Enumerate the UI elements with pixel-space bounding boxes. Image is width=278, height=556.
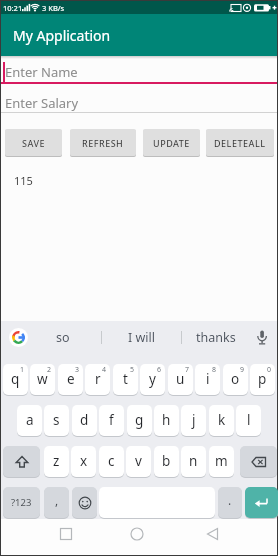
staticText: Enter Salary — [5, 94, 79, 112]
staticText: i — [206, 370, 210, 388]
button[interactable] — [245, 487, 278, 518]
button[interactable]: . — [218, 487, 242, 518]
button[interactable]: q — [3, 364, 28, 395]
staticText: g — [135, 411, 144, 429]
staticText: h — [162, 411, 171, 429]
button[interactable]: m — [209, 446, 234, 477]
button[interactable]: j — [181, 405, 206, 436]
staticText: DELETEALL — [214, 137, 266, 149]
button[interactable] — [194, 521, 230, 551]
staticText: I will — [128, 329, 155, 346]
staticText: q — [11, 370, 20, 388]
button[interactable]: v — [126, 446, 151, 477]
button[interactable]: f — [99, 405, 124, 436]
staticText: a — [26, 411, 34, 429]
button[interactable]: r — [85, 364, 110, 395]
staticText: 0 — [267, 365, 272, 375]
button[interactable]: d — [72, 405, 97, 436]
staticText: thanks — [196, 329, 236, 346]
button[interactable] — [72, 487, 97, 518]
staticText: 2 — [47, 365, 52, 375]
button[interactable] — [119, 521, 155, 551]
button[interactable]: o — [223, 364, 248, 395]
staticText: t — [123, 370, 128, 388]
staticText: REFRESH — [82, 137, 124, 149]
staticText: so — [56, 329, 70, 346]
button[interactable] — [3, 446, 40, 477]
staticText: 9 — [240, 365, 245, 375]
button[interactable]: I will — [104, 326, 178, 349]
staticText: . — [228, 492, 232, 508]
button[interactable]: SAVE — [5, 129, 62, 156]
staticText: UPDATE — [153, 137, 190, 149]
staticText: l — [247, 411, 251, 429]
button[interactable]: Enter Name — [1, 56, 277, 84]
staticText: 3 — [75, 365, 80, 375]
staticText: c — [108, 452, 115, 470]
staticText: o — [231, 370, 240, 388]
staticText: n — [189, 452, 198, 470]
staticText: x — [80, 452, 88, 470]
staticText: ?123 — [11, 496, 32, 509]
staticText: 4 — [102, 365, 107, 375]
staticText: 5 — [130, 365, 135, 375]
staticText: , — [55, 492, 59, 508]
button[interactable]: , — [44, 487, 69, 518]
button[interactable] — [254, 329, 270, 346]
button[interactable]: e — [58, 364, 83, 395]
button[interactable] — [48, 521, 84, 551]
button[interactable]: y — [140, 364, 165, 395]
button[interactable]: g — [127, 405, 152, 436]
staticText: d — [80, 411, 89, 429]
button[interactable]: REFRESH — [70, 129, 136, 156]
button[interactable]: x — [71, 446, 96, 477]
button[interactable]: ?123 — [3, 487, 40, 518]
button[interactable]: k — [209, 405, 234, 436]
button[interactable]: a — [17, 405, 42, 436]
button[interactable]: DELETEALL — [206, 129, 274, 156]
button[interactable]: i — [195, 364, 220, 395]
button[interactable]: b — [154, 446, 179, 477]
button[interactable]: UPDATE — [143, 129, 200, 156]
staticText: 10:21 — [3, 3, 23, 13]
staticText: z — [53, 452, 60, 470]
staticText: 3 KB/s — [42, 3, 65, 13]
staticText: 6 — [157, 365, 162, 375]
staticText: u — [176, 370, 185, 388]
button[interactable]: t — [113, 364, 138, 395]
staticText: j — [192, 411, 196, 429]
staticText: w — [37, 370, 48, 388]
button[interactable]: s — [44, 405, 69, 436]
staticText: s — [53, 411, 60, 429]
staticText: 1 — [20, 365, 25, 375]
staticText: y — [149, 370, 156, 388]
staticText: v — [135, 452, 142, 470]
staticText: Enter Name — [5, 63, 78, 81]
staticText: e — [67, 370, 75, 388]
staticText: k — [218, 411, 226, 429]
button[interactable]: h — [154, 405, 179, 436]
button[interactable] — [9, 328, 28, 347]
staticText: m — [215, 452, 228, 470]
button[interactable]: so — [29, 326, 97, 349]
button[interactable]: c — [99, 446, 124, 477]
button[interactable]: Enter Salary — [1, 84, 277, 113]
staticText: p — [258, 370, 267, 388]
button[interactable]: u — [168, 364, 193, 395]
staticText: f — [109, 411, 114, 429]
staticText: 8 — [212, 365, 217, 375]
button[interactable]: z — [44, 446, 69, 477]
button[interactable]: w — [30, 364, 55, 395]
staticText: 115 — [14, 173, 33, 188]
button[interactable]: n — [181, 446, 206, 477]
staticText: SAVE — [22, 137, 46, 149]
staticText: b — [162, 452, 171, 470]
button[interactable]: l — [236, 405, 261, 436]
staticText: My Application — [13, 26, 111, 45]
button[interactable]: thanks — [184, 326, 248, 349]
button[interactable]: p — [250, 364, 275, 395]
staticText: r — [95, 370, 101, 388]
staticText: 7 — [185, 365, 190, 375]
button[interactable] — [240, 446, 277, 477]
